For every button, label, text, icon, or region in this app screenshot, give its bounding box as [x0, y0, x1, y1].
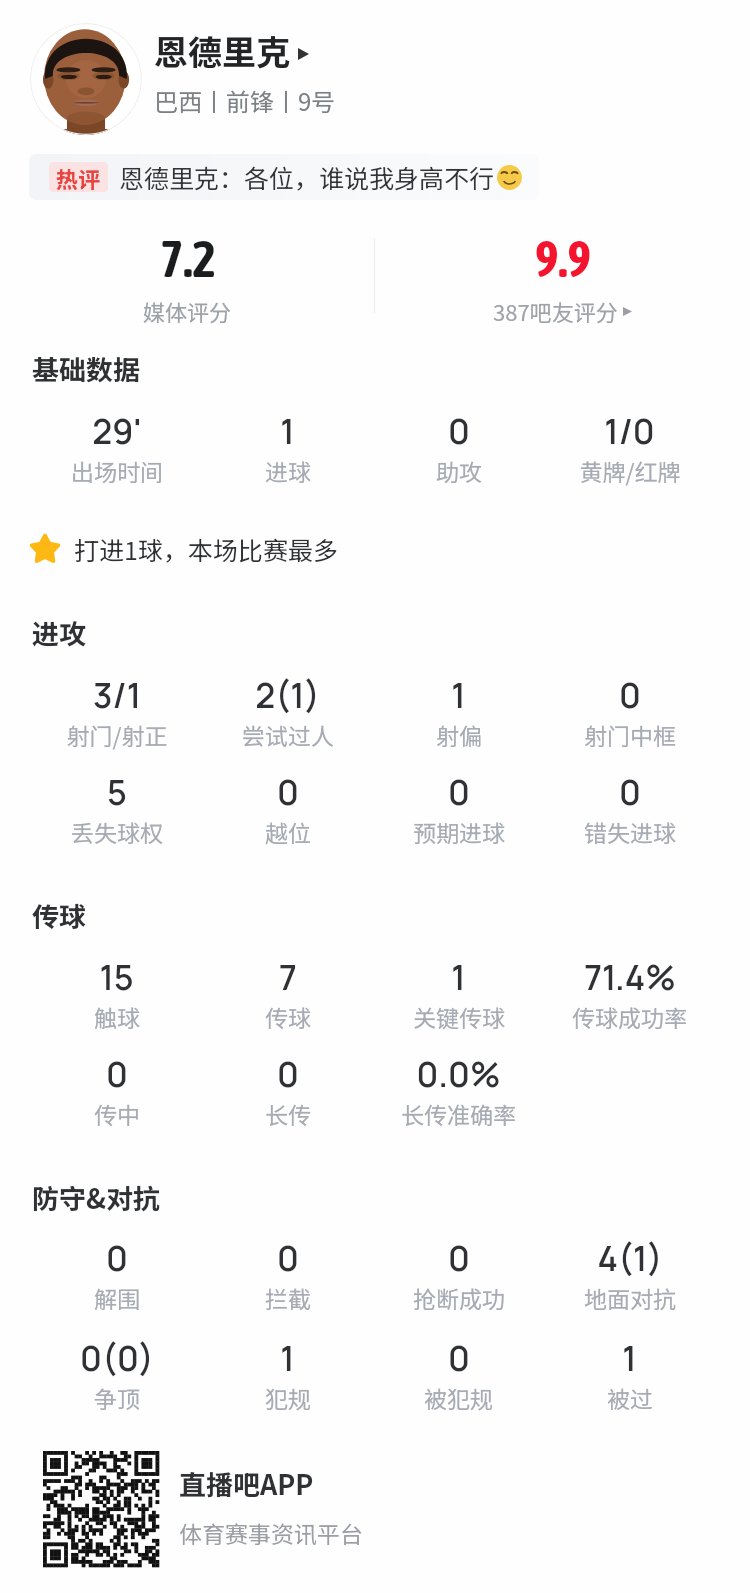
staticText: 恩德里克: [154, 26, 290, 72]
staticText: 传中: [94, 1097, 140, 1130]
staticText: 387吧友评分: [493, 295, 618, 327]
button[interactable]: 0: [373, 769, 544, 848]
button[interactable]: 0: [544, 769, 715, 848]
staticText: 3/1: [93, 672, 141, 718]
button[interactable]: 1/0: [544, 408, 715, 487]
button[interactable]: 0: [373, 1335, 544, 1414]
staticText: 媒体评分: [143, 295, 232, 327]
staticText: 射门/射正: [66, 718, 168, 751]
staticText: 0: [619, 672, 641, 718]
staticText: 传球: [32, 896, 86, 935]
button[interactable]: 7.2: [0, 230, 375, 327]
staticText: 7.2: [160, 230, 216, 287]
button[interactable]: 0: [31, 1051, 202, 1130]
staticText: 5: [107, 769, 127, 815]
staticText: 争顶: [94, 1381, 140, 1414]
staticText: 9.9: [535, 230, 591, 287]
button[interactable]: 5: [31, 769, 202, 848]
staticText: 巴西丨前锋丨9号: [154, 83, 336, 118]
staticText: 长传: [265, 1097, 311, 1130]
staticText: 进球: [265, 454, 311, 487]
staticText: 传球: [265, 1000, 311, 1033]
staticText: 防守&对抗: [32, 1178, 160, 1217]
staticText: 黄牌/红牌: [579, 454, 681, 487]
staticText: 0: [106, 1051, 128, 1097]
button[interactable]: 71.4%: [544, 954, 715, 1033]
button[interactable]: 0: [373, 1235, 544, 1314]
button[interactable]: 1: [202, 408, 373, 487]
staticText: 1: [280, 408, 295, 454]
button[interactable]: 1: [202, 1335, 373, 1414]
button[interactable]: 0: [202, 769, 373, 848]
staticText: 直播吧APP: [179, 1464, 314, 1503]
button[interactable]: 0: [202, 1235, 373, 1314]
staticText: 传球成功率: [572, 1000, 687, 1033]
other: 二维码: [43, 1451, 159, 1567]
staticText: 4(1): [597, 1235, 663, 1281]
staticText: 打进1球，本场比赛最多: [74, 531, 338, 567]
staticText: 抢断成功: [413, 1281, 505, 1314]
staticText: 1: [622, 1335, 637, 1381]
staticText: 1: [280, 1335, 295, 1381]
staticText: 0: [448, 408, 470, 454]
button[interactable]: 球员头像: [30, 23, 142, 135]
staticText: 体育赛事资讯平台: [179, 1516, 363, 1549]
button[interactable]: 0: [202, 1051, 373, 1130]
staticText: 1: [451, 954, 466, 1000]
staticText: 长传准确率: [401, 1097, 516, 1130]
staticText: 29': [92, 408, 142, 454]
staticText: 0: [277, 1235, 299, 1281]
button[interactable]: 7: [202, 954, 373, 1033]
button[interactable]: 1: [373, 672, 544, 751]
button[interactable]: 二维码: [30, 1440, 430, 1580]
staticText: 0: [619, 769, 641, 815]
staticText: 助攻: [436, 454, 482, 487]
staticText: 被过: [607, 1381, 653, 1414]
button[interactable]: 0: [544, 672, 715, 751]
staticText: 丢失球权: [71, 815, 163, 848]
staticText: 1/0: [604, 408, 655, 454]
staticText: 7: [279, 954, 297, 1000]
staticText: 0: [448, 1235, 470, 1281]
staticText: 被犯规: [424, 1381, 493, 1414]
staticText: 0: [448, 769, 470, 815]
staticText: 预期进球: [413, 815, 505, 848]
staticText: 71.4%: [584, 954, 676, 1000]
button[interactable]: 9.9: [375, 230, 750, 327]
staticText: 射偏: [436, 718, 482, 751]
staticText: 错失进球: [584, 815, 676, 848]
button[interactable]: 1: [373, 954, 544, 1033]
button[interactable]: 0: [373, 408, 544, 487]
staticText: 0: [106, 1235, 128, 1281]
button[interactable]: 0.0%: [373, 1051, 544, 1130]
button[interactable]: 热评: [29, 154, 539, 200]
staticText: 尝试过人: [242, 718, 334, 751]
button[interactable]: 4(1): [544, 1235, 715, 1314]
staticText: 2(1): [255, 672, 320, 718]
staticText: 关键传球: [413, 1000, 505, 1033]
staticText: 出场时间: [71, 454, 163, 487]
staticText: 0: [277, 1051, 299, 1097]
staticText: 0: [448, 1335, 470, 1381]
staticText: 1: [451, 672, 466, 718]
staticText: 0(0): [80, 1335, 154, 1381]
staticText: 0.0%: [416, 1051, 501, 1097]
button[interactable]: 0(0): [31, 1335, 202, 1414]
staticText: 地面对抗: [584, 1281, 676, 1314]
button[interactable]: 29': [31, 408, 202, 487]
button[interactable]: 15: [31, 954, 202, 1033]
button[interactable]: 恩德里克: [154, 26, 329, 72]
staticText: 射门中框: [584, 718, 676, 751]
staticText: 基础数据: [32, 349, 140, 388]
button[interactable]: 3/1: [31, 672, 202, 751]
button[interactable]: 2(1): [202, 672, 373, 751]
staticText: 越位: [265, 815, 311, 848]
staticText: 15: [99, 954, 134, 1000]
staticText: 触球: [94, 1000, 140, 1033]
staticText: 拦截: [265, 1281, 311, 1314]
staticText: 解围: [94, 1281, 140, 1314]
button[interactable]: 0: [31, 1235, 202, 1314]
button[interactable]: 打进1球，本场比赛最多: [29, 531, 338, 567]
button[interactable]: 1: [544, 1335, 715, 1414]
staticText: 恩德里克：各位，谁说我身高不行: [119, 159, 495, 195]
